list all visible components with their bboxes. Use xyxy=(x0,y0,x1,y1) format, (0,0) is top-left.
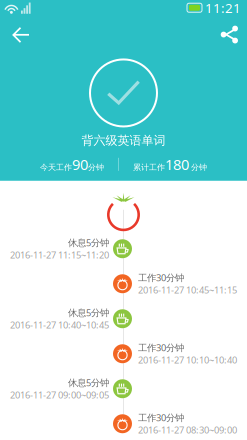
staticText: 背六级英语单词 xyxy=(81,133,165,148)
staticText: 工作30分钟 xyxy=(138,271,184,284)
staticText: 休息5分钟 xyxy=(68,306,109,319)
staticText: 工作30分钟 xyxy=(138,341,184,354)
staticText: 分钟 xyxy=(189,162,207,172)
staticText: 累计工作 xyxy=(133,162,165,172)
staticText: 工作30分钟 xyxy=(138,411,184,424)
staticText: 2016-11-27 10:40~10:45 xyxy=(10,319,109,331)
staticText: 2016-11-27 08:30~09:00 xyxy=(138,424,237,436)
staticText: 今天工作 xyxy=(40,162,72,172)
staticText: 11:21 xyxy=(205,0,241,17)
staticText: 2016-11-27 09:00~09:05 xyxy=(10,389,109,401)
button[interactable]: Share xyxy=(209,16,247,53)
staticText: 2016-11-27 11:15~11:20 xyxy=(10,249,109,261)
staticText: 2016-11-27 10:10~10:40 xyxy=(138,354,237,366)
staticText: 2016-11-27 10:45~11:15 xyxy=(138,284,237,296)
staticText: 休息5分钟 xyxy=(68,236,109,249)
button[interactable]: Back xyxy=(0,17,41,53)
staticText: 90 xyxy=(72,155,88,174)
staticText: 休息5分钟 xyxy=(68,376,109,389)
staticText: 180 xyxy=(165,155,189,174)
staticText: 分钟 xyxy=(88,162,104,172)
